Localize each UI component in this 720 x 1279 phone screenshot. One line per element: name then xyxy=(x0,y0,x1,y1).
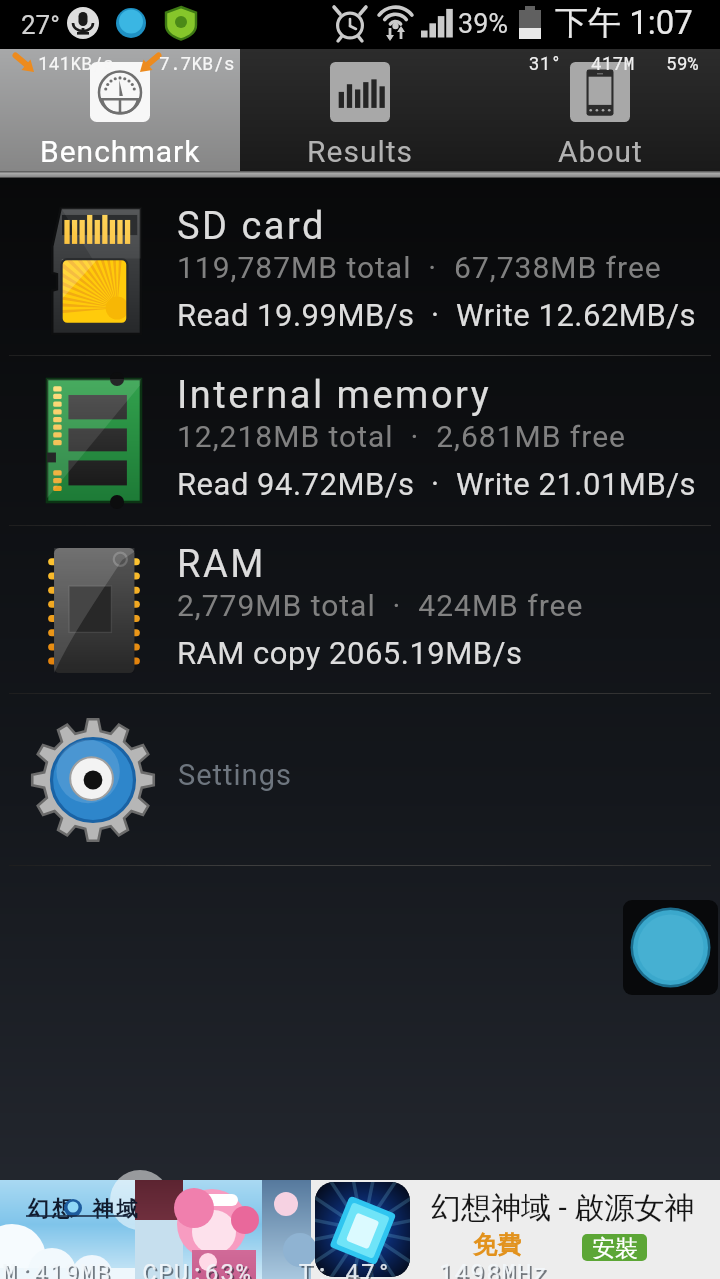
staticText: 141KB/s xyxy=(38,51,114,75)
staticText: 免費 xyxy=(473,1230,521,1260)
button[interactable]: Benchmark xyxy=(0,49,240,178)
staticText: 安裝 xyxy=(592,1234,638,1261)
staticText: 27° xyxy=(21,10,60,40)
staticText: 417M xyxy=(591,51,635,75)
staticText: 幻想神域 - 啟源女神 xyxy=(431,1189,695,1227)
staticText: 31° xyxy=(529,51,562,75)
staticText: 7.7KB/s xyxy=(159,51,235,75)
staticText: RAM copy 2065.19MB/s xyxy=(177,635,523,671)
button[interactable]: Settings xyxy=(0,694,720,865)
button[interactable]: RAM xyxy=(0,526,720,693)
staticText: 59% xyxy=(666,51,699,75)
staticText: M:419MB CPU:63% T: 47° 1498MHz xyxy=(4,1258,551,1279)
staticText: RAM xyxy=(177,542,266,587)
staticText: Results xyxy=(307,134,414,169)
button[interactable]: Internal memory xyxy=(0,356,720,525)
staticText: 12,218MB total · 2,681MB free xyxy=(177,419,626,454)
button[interactable]: 安裝 xyxy=(582,1234,647,1261)
staticText: 下午 1:07 xyxy=(555,2,693,44)
button[interactable]: Start benchmark xyxy=(623,900,718,995)
staticText: Internal memory xyxy=(177,373,492,418)
staticText: 2,779MB total · 424MB free xyxy=(177,588,584,623)
staticText: Benchmark xyxy=(40,134,201,169)
staticText: 39% xyxy=(458,8,509,40)
button[interactable]: SD card xyxy=(0,178,720,355)
staticText: About xyxy=(558,134,643,169)
staticText: Settings xyxy=(178,758,292,792)
button[interactable]: Results xyxy=(240,49,480,178)
staticText: 119,787MB total · 67,738MB free xyxy=(177,250,662,285)
staticText: M:419MB CPU:63% T: 47° 1498MHz xyxy=(2,1256,549,1279)
staticText: SD card xyxy=(177,204,326,249)
staticText: Read 19.99MB/s · Write 12.62MB/s xyxy=(177,297,696,333)
button[interactable]: About xyxy=(480,49,720,178)
staticText: 幻想 神域 xyxy=(28,1196,141,1222)
staticText: Read 94.72MB/s · Write 21.01MB/s xyxy=(177,466,696,502)
